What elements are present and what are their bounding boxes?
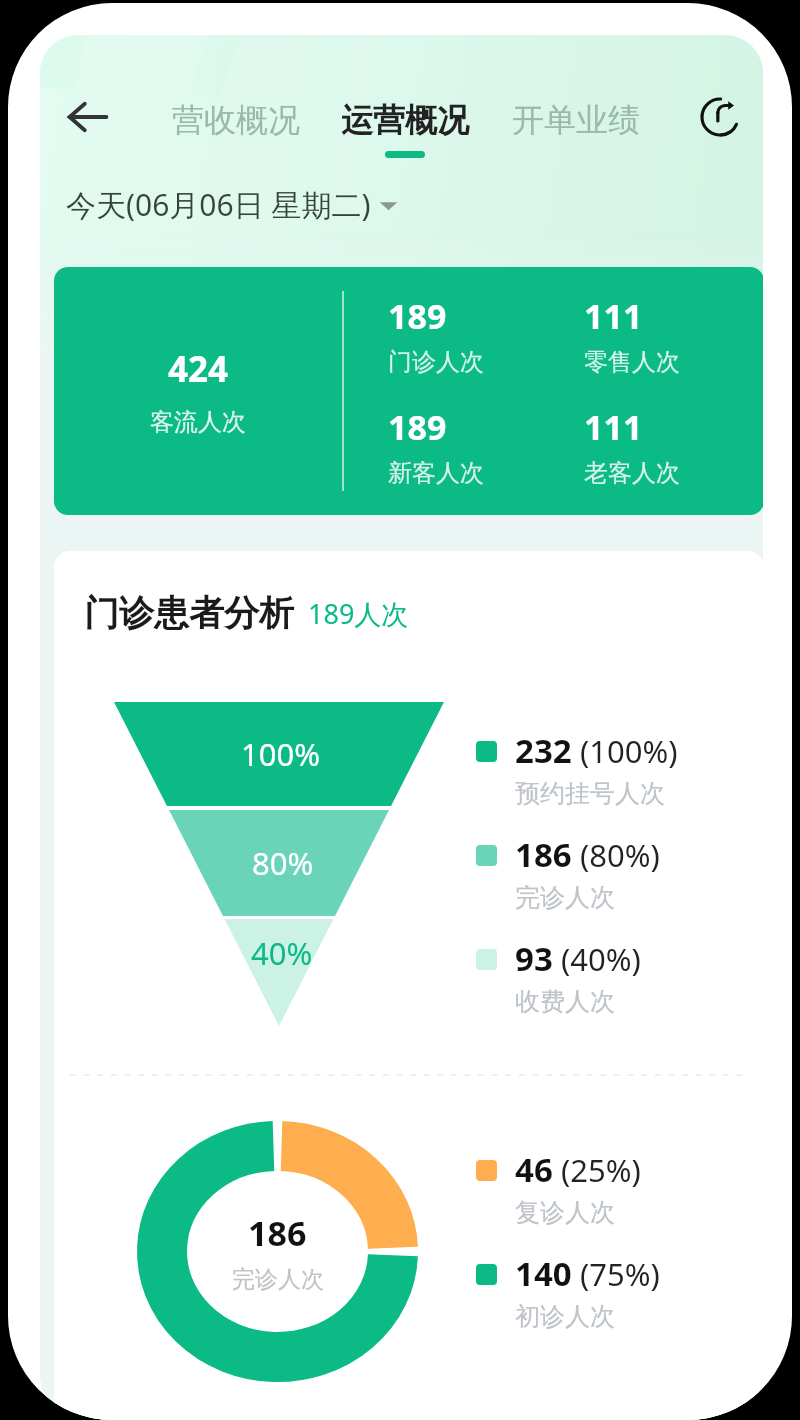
staticText: 189	[388, 404, 447, 450]
staticText: 新客人次	[388, 458, 484, 488]
staticText: (75%)	[580, 1253, 660, 1295]
staticText: 100%	[241, 733, 320, 775]
button[interactable]: 开单业绩	[512, 100, 640, 158]
staticText: 80%	[252, 842, 314, 884]
staticText: (80%)	[580, 834, 660, 876]
staticText: 93	[515, 936, 553, 981]
staticText: 老客人次	[584, 458, 680, 488]
staticText: (25%)	[561, 1149, 641, 1191]
staticText: 收费人次	[515, 986, 615, 1017]
staticText: 开单业绩	[512, 100, 640, 140]
staticText: 186	[515, 832, 572, 877]
staticText: (100%)	[580, 730, 678, 772]
staticText: 运营概况	[341, 100, 469, 140]
staticText: 门诊患者分析	[84, 591, 294, 635]
button[interactable]: 今天(06月06日 星期二)	[66, 184, 398, 225]
staticText: 今天(06月06日 星期二)	[66, 184, 371, 225]
staticText: 完诊人次	[232, 1265, 324, 1294]
staticText: 初诊人次	[515, 1301, 615, 1332]
staticText: 232	[515, 728, 572, 773]
staticText: 111	[584, 293, 643, 339]
staticText: 营收概况	[172, 100, 300, 140]
button[interactable]: Back	[56, 85, 120, 149]
staticText: 预约挂号人次	[515, 778, 665, 809]
staticText: 零售人次	[584, 347, 680, 377]
staticText: 门诊人次	[388, 347, 484, 377]
button[interactable]: Refresh	[688, 85, 752, 149]
staticText: 客流人次	[150, 407, 246, 437]
button[interactable]: 运营概况	[341, 100, 469, 158]
staticText: (40%)	[561, 938, 641, 980]
staticText: 186	[248, 1210, 307, 1256]
button[interactable]: 营收概况	[172, 100, 300, 158]
staticText: 46	[515, 1147, 553, 1192]
staticText: 111	[584, 404, 643, 450]
staticText: 140	[515, 1251, 572, 1296]
staticText: 完诊人次	[515, 882, 615, 913]
staticText: 40%	[251, 932, 313, 974]
staticText: 189	[388, 293, 447, 339]
staticText: 189人次	[308, 595, 409, 632]
staticText: 424	[168, 345, 229, 393]
staticText: 复诊人次	[515, 1197, 615, 1228]
